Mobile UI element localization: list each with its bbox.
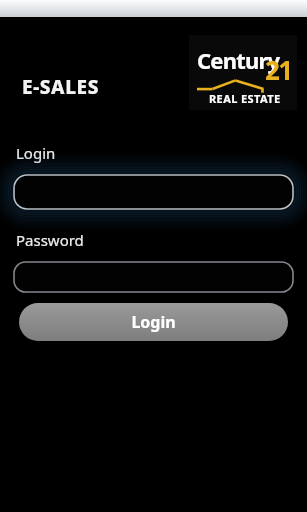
staticText: E-SALES [22,74,100,100]
button[interactable] [0,259,307,295]
staticText: Century [197,45,280,75]
staticText: Password [16,230,84,250]
staticText: Login [16,143,56,163]
other: Century 21 Real Estate [195,41,291,104]
staticText: REAL ESTATE [209,91,281,106]
staticText: 21 [265,52,292,87]
button[interactable] [0,172,307,212]
button[interactable]: Login [19,303,288,341]
staticText: Login [131,311,176,333]
